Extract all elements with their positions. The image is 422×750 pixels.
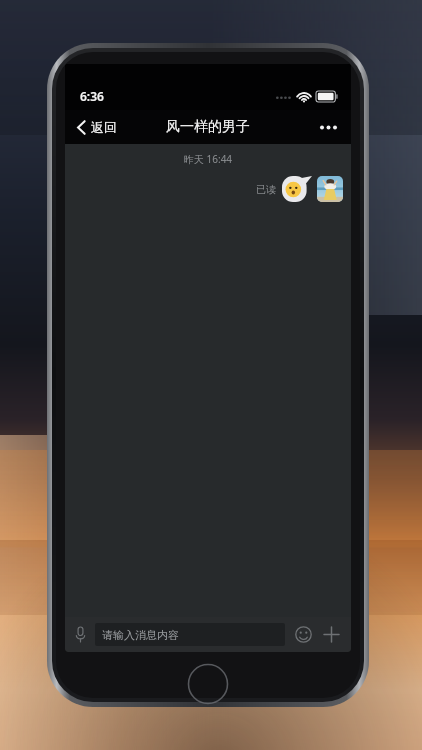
staticText: 返回 <box>91 119 117 135</box>
staticText: 请输入消息内容 <box>102 628 179 642</box>
button[interactable]: Voice input <box>72 623 89 646</box>
button[interactable]: Avatar <box>317 176 343 202</box>
button[interactable]: 请输入消息内容 <box>95 623 285 646</box>
staticText: 6:36 <box>80 88 104 104</box>
button[interactable]: More <box>321 624 342 645</box>
staticText: 已读 <box>256 183 276 196</box>
button[interactable]: 返回 <box>73 115 121 139</box>
staticText: 风一样的男子 <box>166 118 250 136</box>
button[interactable]: Emoji <box>293 624 314 645</box>
staticText: 昨天 16:44 <box>65 152 351 166</box>
button[interactable]: More options <box>314 119 343 136</box>
button[interactable] <box>282 176 312 202</box>
